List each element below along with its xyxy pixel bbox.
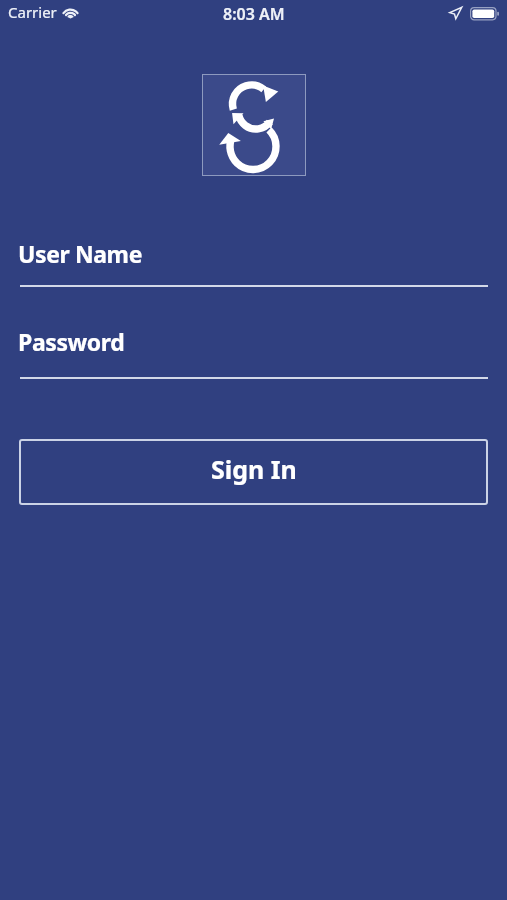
staticText: User Name [18,238,142,269]
staticText: Carrier [8,2,57,22]
staticText: Sign In [211,452,297,486]
button[interactable] [20,240,488,287]
staticText: Password [18,326,125,357]
staticText: 8:03 AM [223,3,285,25]
button[interactable]: Sign In [19,439,488,505]
button[interactable] [20,332,488,379]
